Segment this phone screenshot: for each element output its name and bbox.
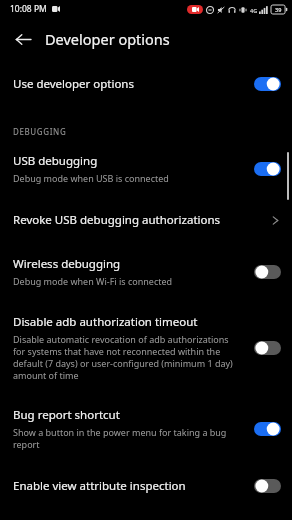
staticText: Developer options: [45, 29, 170, 49]
staticText: Debug mode when Wi-Fi is connected: [13, 275, 173, 287]
staticText: Enable view attribute inspection: [13, 478, 186, 494]
button[interactable]: Disable adb authorization timeout: [0, 306, 292, 389]
button[interactable]: Off: [250, 476, 284, 496]
staticText: Show a button in the power menu for taki…: [13, 426, 242, 450]
button[interactable]: Off: [250, 338, 284, 358]
button[interactable]: Bug report shortcut: [0, 399, 292, 458]
button[interactable]: On: [250, 74, 284, 94]
staticText: Disable adb authorization timeout: [13, 314, 198, 330]
staticText: Use developer options: [13, 76, 134, 92]
staticText: DEBUGGING: [13, 126, 67, 137]
button[interactable]: USB debugging: [0, 143, 292, 194]
button[interactable]: Revoke USB debugging authorizations: [0, 202, 292, 238]
button[interactable]: Off: [250, 262, 284, 282]
button[interactable]: Wireless debugging: [0, 246, 292, 297]
staticText: Wireless debugging: [13, 256, 121, 272]
staticText: Revoke USB debugging authorizations: [13, 212, 221, 228]
button[interactable]: On: [250, 419, 284, 439]
staticText: 4G: [250, 7, 258, 14]
button[interactable]: Back: [6, 22, 40, 56]
staticText: Bug report shortcut: [13, 407, 120, 423]
button[interactable]: Enable view attribute inspection: [0, 468, 292, 510]
button[interactable]: Use developer options: [0, 64, 292, 104]
staticText: USB debugging: [13, 153, 98, 169]
staticText: Debug mode when USB is connected: [13, 172, 169, 184]
button[interactable]: On: [250, 159, 284, 179]
staticText: 39: [275, 6, 282, 13]
staticText: Disable automatic revocation of adb auth…: [13, 333, 242, 381]
staticText: 10:08 PM: [10, 3, 47, 15]
